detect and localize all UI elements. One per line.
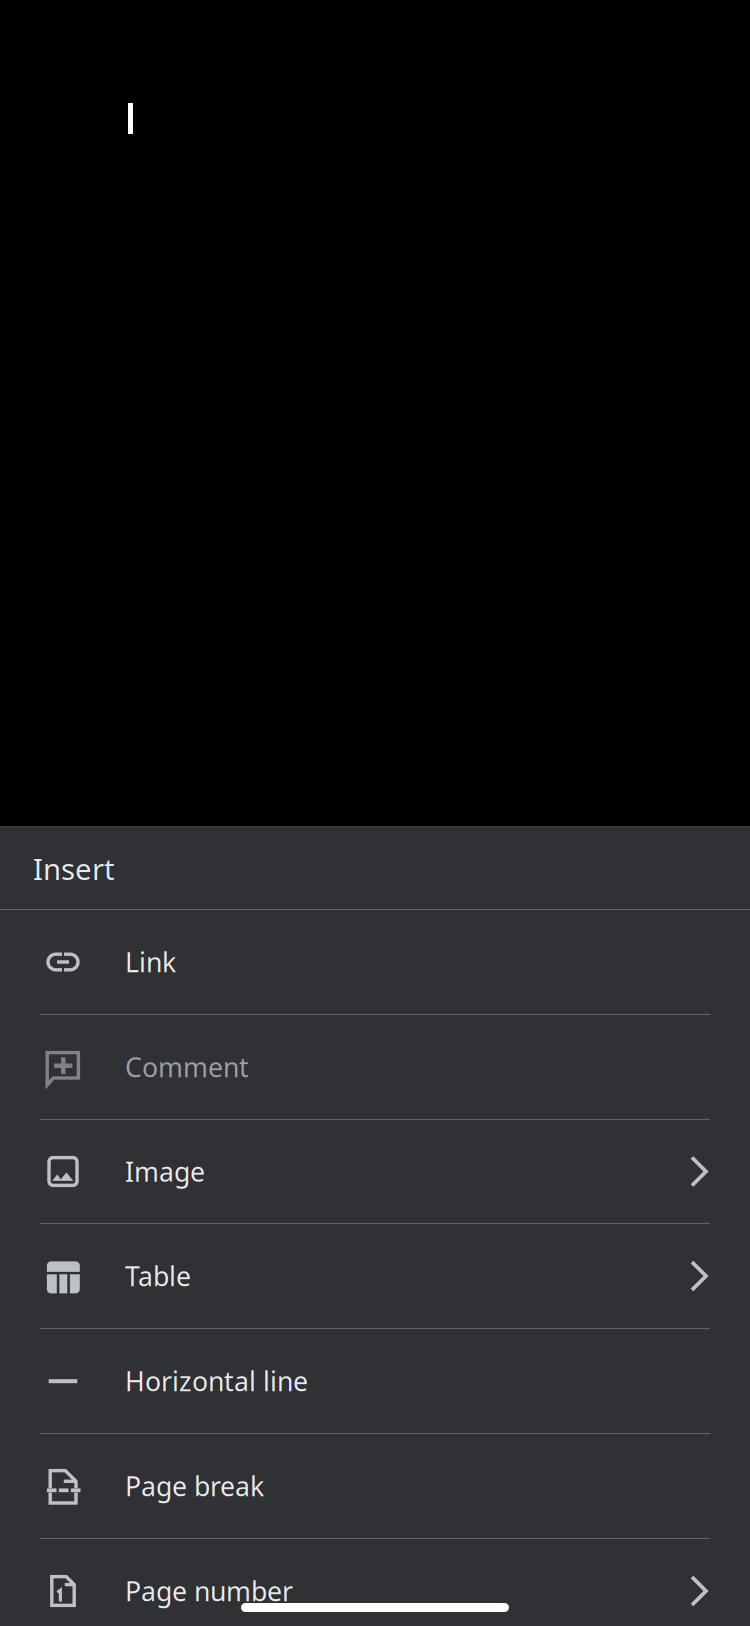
staticText: Insert [33, 849, 115, 888]
staticText: Link [125, 944, 176, 980]
button[interactable]: Image [0, 1120, 750, 1224]
button[interactable]: Table [0, 1224, 750, 1329]
staticText: Page number [125, 1573, 293, 1609]
staticText: Table [125, 1258, 191, 1294]
button[interactable]: Link [0, 910, 750, 1015]
button[interactable]: Page break [0, 1434, 750, 1539]
button[interactable]: Page number [0, 1539, 750, 1626]
staticText: Image [125, 1154, 205, 1189]
button[interactable]: Horizontal line [0, 1329, 750, 1434]
staticText: Comment [125, 1049, 249, 1085]
staticText: Page break [125, 1468, 264, 1504]
staticText: Horizontal line [125, 1363, 308, 1399]
button[interactable]: Comment [0, 1015, 750, 1120]
